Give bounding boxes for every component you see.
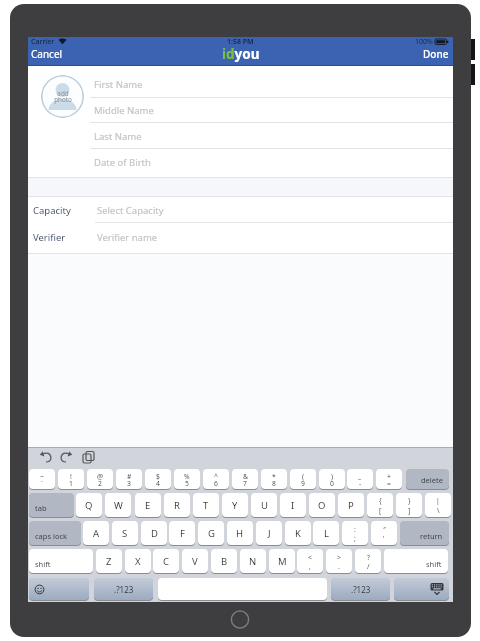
- staticText: 5: [185, 479, 189, 488]
- staticText: shift: [35, 559, 51, 569]
- button[interactable]: S: [112, 521, 138, 545]
- staticText: Last Name: [94, 130, 142, 143]
- button[interactable]: E: [135, 493, 161, 517]
- staticText: 7: [243, 479, 247, 488]
- staticText: Capacity: [33, 204, 71, 217]
- button[interactable]: [29, 521, 81, 545]
- button[interactable]: B: [211, 549, 237, 573]
- button[interactable]: [406, 469, 449, 489]
- button[interactable]: Verifier: [33, 231, 95, 244]
- button[interactable]: W: [105, 493, 131, 517]
- staticText: M: [278, 555, 287, 568]
- staticText: C: [163, 555, 170, 568]
- button[interactable]: F: [169, 521, 195, 545]
- button[interactable]: add photo: [41, 75, 84, 118]
- button[interactable]: R: [164, 493, 190, 517]
- button[interactable]: X: [125, 549, 151, 573]
- button[interactable]: Z: [96, 549, 122, 573]
- staticText: <: [308, 553, 312, 562]
- button[interactable]: [261, 469, 287, 489]
- button[interactable]: .?123: [94, 578, 153, 600]
- button[interactable]: [232, 469, 258, 489]
- button[interactable]: I: [280, 493, 306, 517]
- staticText: Verifier: [33, 231, 66, 244]
- button[interactable]: H: [227, 521, 253, 545]
- button[interactable]: [326, 549, 352, 573]
- staticText: -: [359, 479, 362, 488]
- button[interactable]: [87, 469, 113, 489]
- button[interactable]: [58, 469, 84, 489]
- staticText: 100%: [415, 37, 433, 47]
- button[interactable]: [145, 469, 171, 489]
- staticText: %: [184, 472, 190, 481]
- staticText: 3: [127, 479, 131, 488]
- button[interactable]: P: [338, 493, 364, 517]
- button[interactable]: U: [251, 493, 277, 517]
- staticText: ^: [214, 472, 218, 481]
- staticText: [: [379, 506, 382, 515]
- button[interactable]: Capacity: [33, 204, 95, 217]
- button[interactable]: [158, 578, 327, 600]
- button[interactable]: D: [141, 521, 167, 545]
- button[interactable]: T: [193, 493, 219, 517]
- button[interactable]: K: [285, 521, 311, 545]
- button[interactable]: [355, 549, 381, 573]
- staticText: Cancel: [31, 47, 63, 61]
- staticText: ): [331, 472, 334, 481]
- button[interactable]: [116, 469, 142, 489]
- staticText: =: [387, 479, 391, 488]
- staticText: H: [236, 527, 244, 540]
- button[interactable]: V: [182, 549, 208, 573]
- button[interactable]: [174, 469, 200, 489]
- button[interactable]: [29, 549, 93, 573]
- button[interactable]: [297, 549, 323, 573]
- staticText: K: [295, 527, 301, 540]
- button[interactable]: M: [269, 549, 295, 573]
- button[interactable]: [203, 469, 229, 489]
- button[interactable]: [29, 578, 89, 600]
- button[interactable]: [29, 469, 55, 489]
- button[interactable]: [347, 469, 373, 489]
- button[interactable]: [396, 493, 422, 517]
- button[interactable]: Q: [76, 493, 102, 517]
- staticText: :: [354, 525, 356, 534]
- staticText: \: [437, 506, 440, 515]
- button[interactable]: [290, 469, 316, 489]
- staticText: 6: [214, 479, 218, 488]
- button[interactable]: Cancel: [31, 46, 101, 61]
- staticText: .?123: [114, 584, 134, 595]
- staticText: 1: [69, 479, 73, 488]
- button[interactable]: [29, 493, 74, 517]
- staticText: G: [208, 527, 215, 540]
- button[interactable]: O: [309, 493, 335, 517]
- staticText: O: [318, 499, 326, 512]
- button[interactable]: C: [153, 549, 179, 573]
- button[interactable]: A: [83, 521, 109, 545]
- staticText: shift: [426, 559, 442, 569]
- button[interactable]: [394, 578, 449, 600]
- staticText: delete: [421, 475, 443, 485]
- button[interactable]: L: [313, 521, 339, 545]
- button[interactable]: [425, 493, 451, 517]
- button[interactable]: N: [240, 549, 266, 573]
- staticText: Verifier name: [97, 231, 158, 244]
- staticText: .?123: [351, 584, 371, 595]
- button[interactable]: Done: [379, 46, 449, 61]
- button[interactable]: [367, 493, 393, 517]
- staticText: V: [192, 555, 198, 568]
- staticText: R: [174, 499, 180, 512]
- staticText: ?: [367, 553, 370, 562]
- button[interactable]: J: [256, 521, 282, 545]
- staticText: 1:58 PM: [227, 37, 254, 47]
- staticText: $: [156, 472, 160, 481]
- button[interactable]: G: [198, 521, 224, 545]
- button[interactable]: [400, 521, 449, 545]
- staticText: !: [70, 472, 72, 481]
- button[interactable]: [384, 549, 448, 573]
- button[interactable]: [319, 469, 345, 489]
- button[interactable]: [376, 469, 402, 489]
- button[interactable]: Y: [222, 493, 248, 517]
- button[interactable]: [342, 521, 368, 545]
- button[interactable]: .?123: [331, 578, 390, 600]
- button[interactable]: [371, 521, 397, 545]
